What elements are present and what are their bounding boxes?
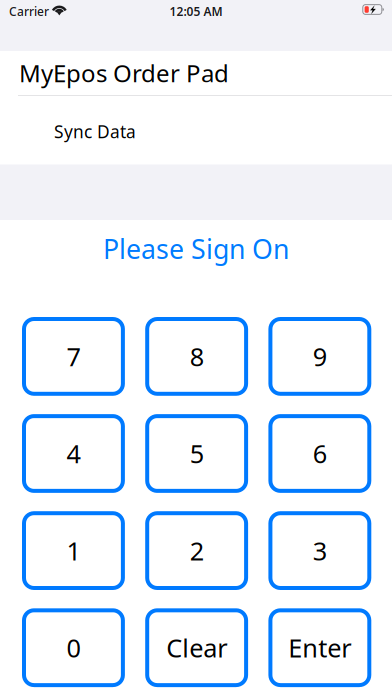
button[interactable]: 0 <box>24 610 123 685</box>
staticText: 2 <box>190 534 204 567</box>
button[interactable]: 7 <box>24 319 123 394</box>
button[interactable]: 2 <box>147 513 246 588</box>
staticText: 7 <box>66 340 80 373</box>
button[interactable]: 4 <box>24 416 123 491</box>
button[interactable]: 5 <box>147 416 246 491</box>
staticText: 12:05 AM <box>169 3 222 19</box>
button[interactable]: 6 <box>270 416 369 491</box>
button[interactable]: 9 <box>270 319 369 394</box>
staticText: 3 <box>313 534 327 567</box>
button[interactable]: 3 <box>270 513 369 588</box>
staticText: MyEpos Order Pad <box>19 57 229 89</box>
staticText: Enter <box>288 631 351 664</box>
button[interactable]: Sync Data <box>0 96 392 164</box>
staticText: Please Sign On <box>103 231 289 266</box>
staticText: 0 <box>66 631 80 664</box>
staticText: 1 <box>66 534 80 567</box>
staticText: Carrier <box>9 3 49 19</box>
button[interactable]: 1 <box>24 513 123 588</box>
button[interactable]: 8 <box>147 319 246 394</box>
button[interactable]: Enter <box>270 610 369 685</box>
staticText: 5 <box>190 437 204 470</box>
staticText: 6 <box>313 437 327 470</box>
staticText: Clear <box>166 631 227 664</box>
staticText: 9 <box>313 340 327 373</box>
staticText: Sync Data <box>54 120 136 143</box>
staticText: 8 <box>190 340 204 373</box>
staticText: 4 <box>66 437 80 470</box>
button[interactable]: Clear <box>147 610 246 685</box>
